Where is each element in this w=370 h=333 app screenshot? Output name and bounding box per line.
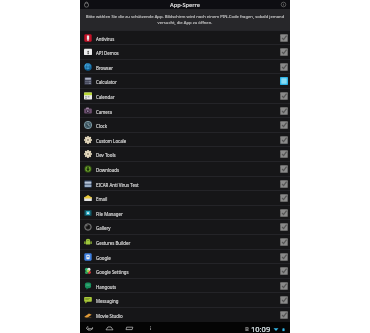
button[interactable]: Home [104, 323, 115, 333]
button[interactable]: Email [80, 191, 290, 205]
staticText: Hangouts [96, 284, 117, 290]
button[interactable]: Google Settings [80, 264, 290, 278]
button[interactable]: App logo [83, 1, 90, 8]
button[interactable]: Info [280, 1, 287, 8]
staticText: Clock [96, 123, 108, 129]
button[interactable]: Browser [80, 60, 290, 73]
staticText: App-Sperre [170, 1, 200, 9]
button[interactable]: Dev Tools [80, 147, 290, 161]
button[interactable]: Movie Studio [80, 308, 290, 322]
button[interactable]: Downloads [80, 162, 290, 176]
staticText: Messaging [96, 298, 119, 304]
button[interactable]: EICAR Anti Virus Test [80, 177, 290, 190]
button[interactable]: File Manager [80, 206, 290, 219]
staticText: Bitte wählen Sie die zu schützende App. … [82, 14, 288, 26]
staticText: 10:09 [251, 324, 271, 333]
staticText: EICAR Anti Virus Test [96, 182, 139, 188]
button[interactable]: Calculator [80, 74, 290, 88]
button[interactable]: More options [145, 323, 156, 333]
staticText: API Demos [96, 50, 119, 56]
staticText: Custom Locale [96, 138, 127, 144]
staticText: B [245, 325, 249, 333]
staticText: Google [96, 255, 111, 261]
button[interactable]: Custom Locale [80, 133, 290, 146]
button[interactable]: Antivirus [80, 31, 290, 44]
staticText: Browser [96, 65, 113, 71]
staticText: Gestures Builder [96, 240, 131, 246]
button[interactable]: API Demos [80, 45, 290, 59]
staticText: Gallery [96, 225, 111, 231]
button[interactable]: Recent apps [124, 323, 135, 333]
staticText: Google Settings [96, 269, 129, 275]
staticText: Movie Studio [96, 313, 123, 319]
staticText: File Manager [96, 211, 123, 217]
staticText: Email [96, 196, 108, 202]
staticText: Downloads [96, 167, 119, 173]
button[interactable]: Hangouts [80, 279, 290, 292]
button[interactable]: Messaging [80, 293, 290, 307]
button[interactable]: Clock [80, 118, 290, 132]
button[interactable]: Gestures Builder [80, 235, 290, 249]
staticText: Camera [96, 109, 113, 115]
button[interactable]: Google [80, 250, 290, 263]
staticText: Antivirus [96, 36, 115, 42]
staticText: Calendar [96, 94, 115, 100]
button[interactable]: Camera [80, 104, 290, 117]
button[interactable]: Back [84, 323, 95, 333]
button[interactable]: Calendar [80, 89, 290, 103]
staticText: Dev Tools [96, 152, 116, 158]
button[interactable]: Gallery [80, 220, 290, 234]
staticText: Calculator [96, 79, 117, 85]
